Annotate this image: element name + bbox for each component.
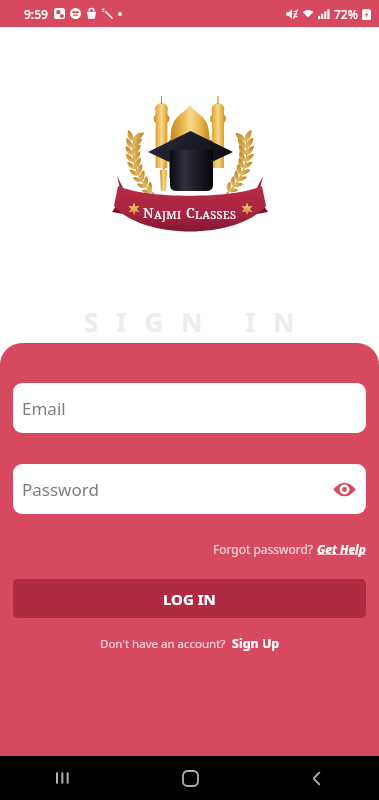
staticText: N — [143, 203, 154, 222]
staticText: Don't have an account? — [100, 636, 232, 652]
staticText: Email — [22, 397, 66, 420]
button[interactable]: LOG IN — [13, 579, 366, 618]
staticText: SIGN IN — [84, 304, 313, 339]
staticText: LOG IN — [163, 589, 216, 609]
staticText: 72% — [334, 6, 358, 22]
staticText: C — [182, 203, 195, 222]
staticText: Get Help — [317, 541, 366, 557]
button[interactable]: Home — [168, 756, 212, 800]
staticText: 9:59 — [24, 6, 48, 22]
staticText: Password — [22, 478, 99, 501]
staticText: LASSES — [195, 207, 237, 222]
button[interactable]: Get Help — [317, 541, 366, 557]
staticText: AJMI — [154, 207, 182, 222]
button[interactable]: Show password — [332, 477, 356, 501]
staticText: Forgot password? — [213, 541, 317, 557]
staticText: Sign Up — [232, 635, 280, 652]
button[interactable]: Recent apps — [41, 756, 85, 800]
button[interactable]: Password — [13, 464, 366, 514]
button[interactable]: Back — [294, 756, 338, 800]
button[interactable]: Sign Up — [232, 635, 280, 652]
button[interactable]: Email — [13, 383, 366, 433]
